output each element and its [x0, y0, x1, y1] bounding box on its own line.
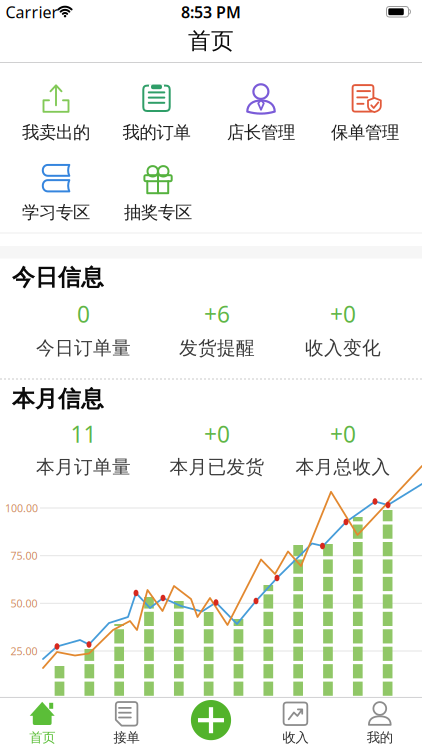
staticText: 接单 [114, 729, 140, 746]
button[interactable]: 店长管理 [211, 85, 311, 142]
button[interactable]: 收入 [255, 700, 335, 747]
button[interactable]: 我的订单 [106, 85, 206, 142]
button[interactable]: 抽奖专区 [108, 165, 208, 222]
staticText: 75.00 [10, 549, 37, 563]
staticText: 首页 [188, 27, 234, 55]
staticText: 25.00 [10, 644, 37, 658]
staticText: 我的 [367, 729, 393, 746]
staticText: 保单管理 [331, 122, 399, 143]
staticText: 11 [70, 419, 96, 449]
button[interactable]: 保单管理 [315, 85, 415, 142]
button[interactable]: 学习专区 [6, 165, 106, 222]
staticText: 我的订单 [122, 122, 190, 143]
staticText: +6 [204, 299, 230, 329]
staticText: +0 [330, 299, 356, 329]
staticText: 我卖出的 [22, 122, 90, 143]
staticText: 店长管理 [227, 122, 295, 143]
staticText: 抽奖专区 [124, 202, 192, 223]
staticText: +0 [204, 419, 230, 449]
staticText: 本月已发货 [169, 455, 264, 478]
button[interactable]: 我的 [340, 700, 420, 747]
button[interactable]: 首页 [2, 700, 82, 747]
staticText: 8:53 PM [181, 1, 241, 23]
staticText: 今日信息 [12, 264, 104, 291]
staticText: +0 [330, 419, 356, 449]
button[interactable] [189, 699, 233, 742]
button[interactable]: 我卖出的 [6, 85, 106, 142]
staticText: 收入变化 [305, 336, 381, 359]
staticText: 本月总收入 [295, 455, 390, 478]
staticText: 100.00 [5, 501, 38, 515]
staticText: 0 [77, 299, 90, 329]
staticText: 50.00 [10, 596, 37, 610]
staticText: 学习专区 [22, 202, 90, 223]
button[interactable]: 接单 [87, 700, 167, 747]
staticText: 本月订单量 [36, 455, 131, 478]
staticText: Carrier [5, 1, 58, 23]
staticText: 本月信息 [12, 385, 104, 413]
staticText: 今日订单量 [36, 336, 131, 359]
staticText: 发货提醒 [179, 336, 255, 359]
staticText: 首页 [29, 729, 55, 746]
staticText: 收入 [282, 729, 308, 746]
